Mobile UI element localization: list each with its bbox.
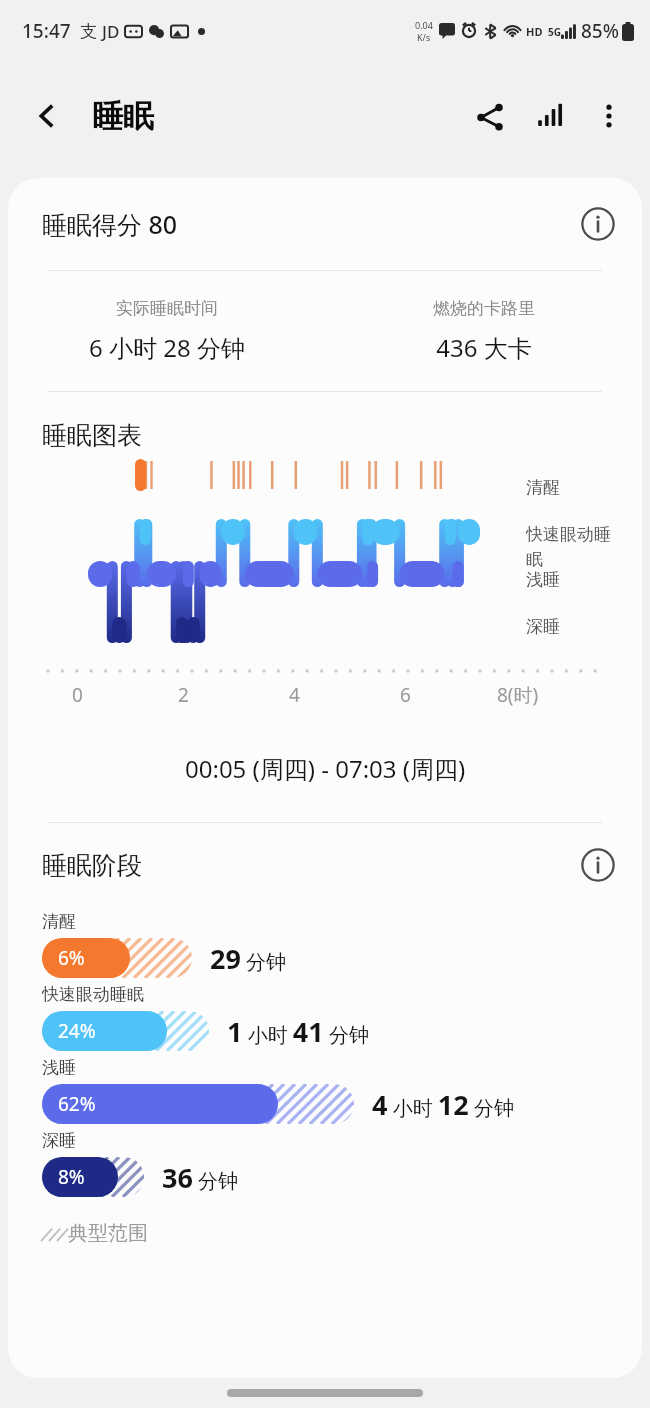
staticText: 8(时) xyxy=(497,682,539,708)
staticText: 6% xyxy=(58,945,85,971)
staticText: 4 小时 12 分钟 xyxy=(372,1086,514,1123)
staticText: 实际睡眠时间 xyxy=(116,298,218,319)
staticText: 快速眼动睡眠 xyxy=(42,984,144,1005)
staticText: 清醒 xyxy=(526,477,560,498)
staticText: HD xyxy=(526,24,543,39)
staticText: JD xyxy=(102,20,120,43)
staticText: 睡眠 xyxy=(92,97,154,136)
staticText: 62% xyxy=(58,1091,96,1117)
staticText: 36 分钟 xyxy=(162,1159,239,1196)
button[interactable]: 睡眠得分信息 xyxy=(570,196,626,252)
staticText: 0.04 xyxy=(415,19,433,31)
staticText: 浅睡 xyxy=(526,569,560,590)
staticText: 浅睡 xyxy=(42,1057,76,1078)
staticText: 快速眼动睡 xyxy=(526,524,611,545)
staticText: 5G xyxy=(548,25,561,39)
button[interactable]: 统计 xyxy=(520,86,580,146)
staticText: 8% xyxy=(58,1164,85,1190)
staticText: 深睡 xyxy=(42,1130,76,1151)
staticText: 1 小时 41 分钟 xyxy=(227,1013,369,1050)
staticText: 深睡 xyxy=(526,616,560,637)
staticText: 睡眠得分 80 xyxy=(42,207,178,241)
staticText: 29 分钟 xyxy=(210,940,287,977)
staticText: K/s xyxy=(417,31,431,43)
staticText: 6 小时 28 分钟 xyxy=(89,331,245,364)
staticText: 支 xyxy=(80,21,97,42)
button[interactable]: 睡眠阶段信息 xyxy=(570,837,626,893)
button[interactable]: 返回 xyxy=(20,89,74,143)
staticText: 眠 xyxy=(526,549,543,570)
staticText: 清醒 xyxy=(42,911,76,932)
staticText: 2 xyxy=(178,682,189,708)
staticText: 436 大卡 xyxy=(436,331,532,364)
staticText: 85% xyxy=(581,18,619,44)
staticText: 典型范围 xyxy=(68,1221,148,1246)
staticText: 6 xyxy=(400,682,411,708)
button[interactable]: 更多选项 xyxy=(580,87,638,145)
staticText: 24% xyxy=(58,1018,96,1044)
staticText: 0 xyxy=(72,682,83,708)
staticText: 00:05 (周四) - 07:03 (周四) xyxy=(185,752,466,785)
staticText: 燃烧的卡路里 xyxy=(433,298,535,319)
staticText: 睡眠阶段 xyxy=(42,850,142,881)
button[interactable]: 分享 xyxy=(460,86,520,146)
staticText: 睡眠图表 xyxy=(42,420,142,451)
staticText: 15:47 xyxy=(22,18,71,44)
staticText: 4 xyxy=(289,682,300,708)
